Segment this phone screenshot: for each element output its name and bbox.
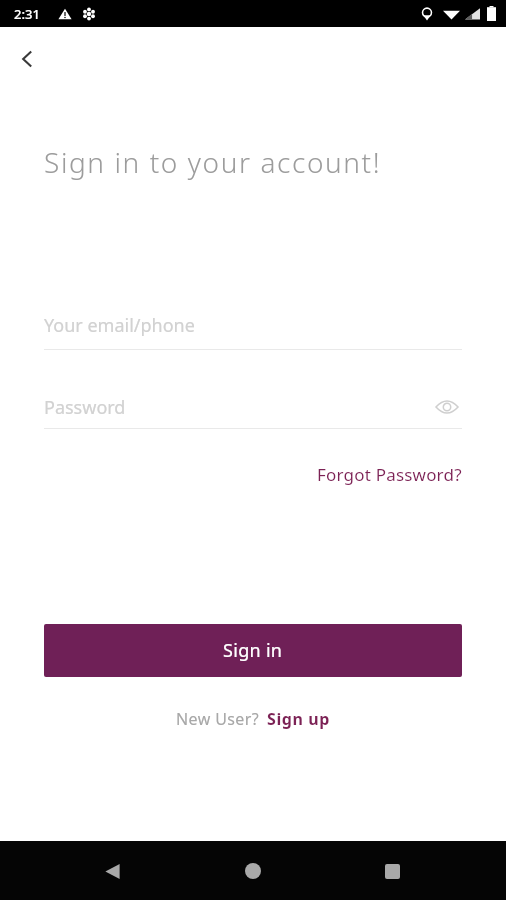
staticText: Your email/phone (44, 313, 195, 338)
button[interactable]: Recent apps (370, 849, 414, 893)
button[interactable]: Sign up (266, 705, 331, 733)
staticText: Password (44, 395, 432, 420)
staticText: Forgot Password? (317, 463, 462, 486)
staticText: Sign up (267, 708, 330, 730)
button[interactable]: Forgot Password? (317, 459, 462, 490)
staticText: Sign in to your account! (44, 143, 382, 181)
button[interactable]: Sign in (44, 624, 462, 677)
button[interactable]: Back (6, 37, 50, 81)
button[interactable]: Show password (432, 392, 462, 422)
button[interactable]: Home (231, 849, 275, 893)
button[interactable]: Your email/phone (44, 313, 462, 350)
staticText: 2:31 (14, 5, 40, 23)
button[interactable]: Password (44, 392, 462, 429)
staticText: New User? (176, 708, 260, 730)
button[interactable]: Back (90, 849, 134, 893)
staticText: Sign in (223, 638, 283, 663)
